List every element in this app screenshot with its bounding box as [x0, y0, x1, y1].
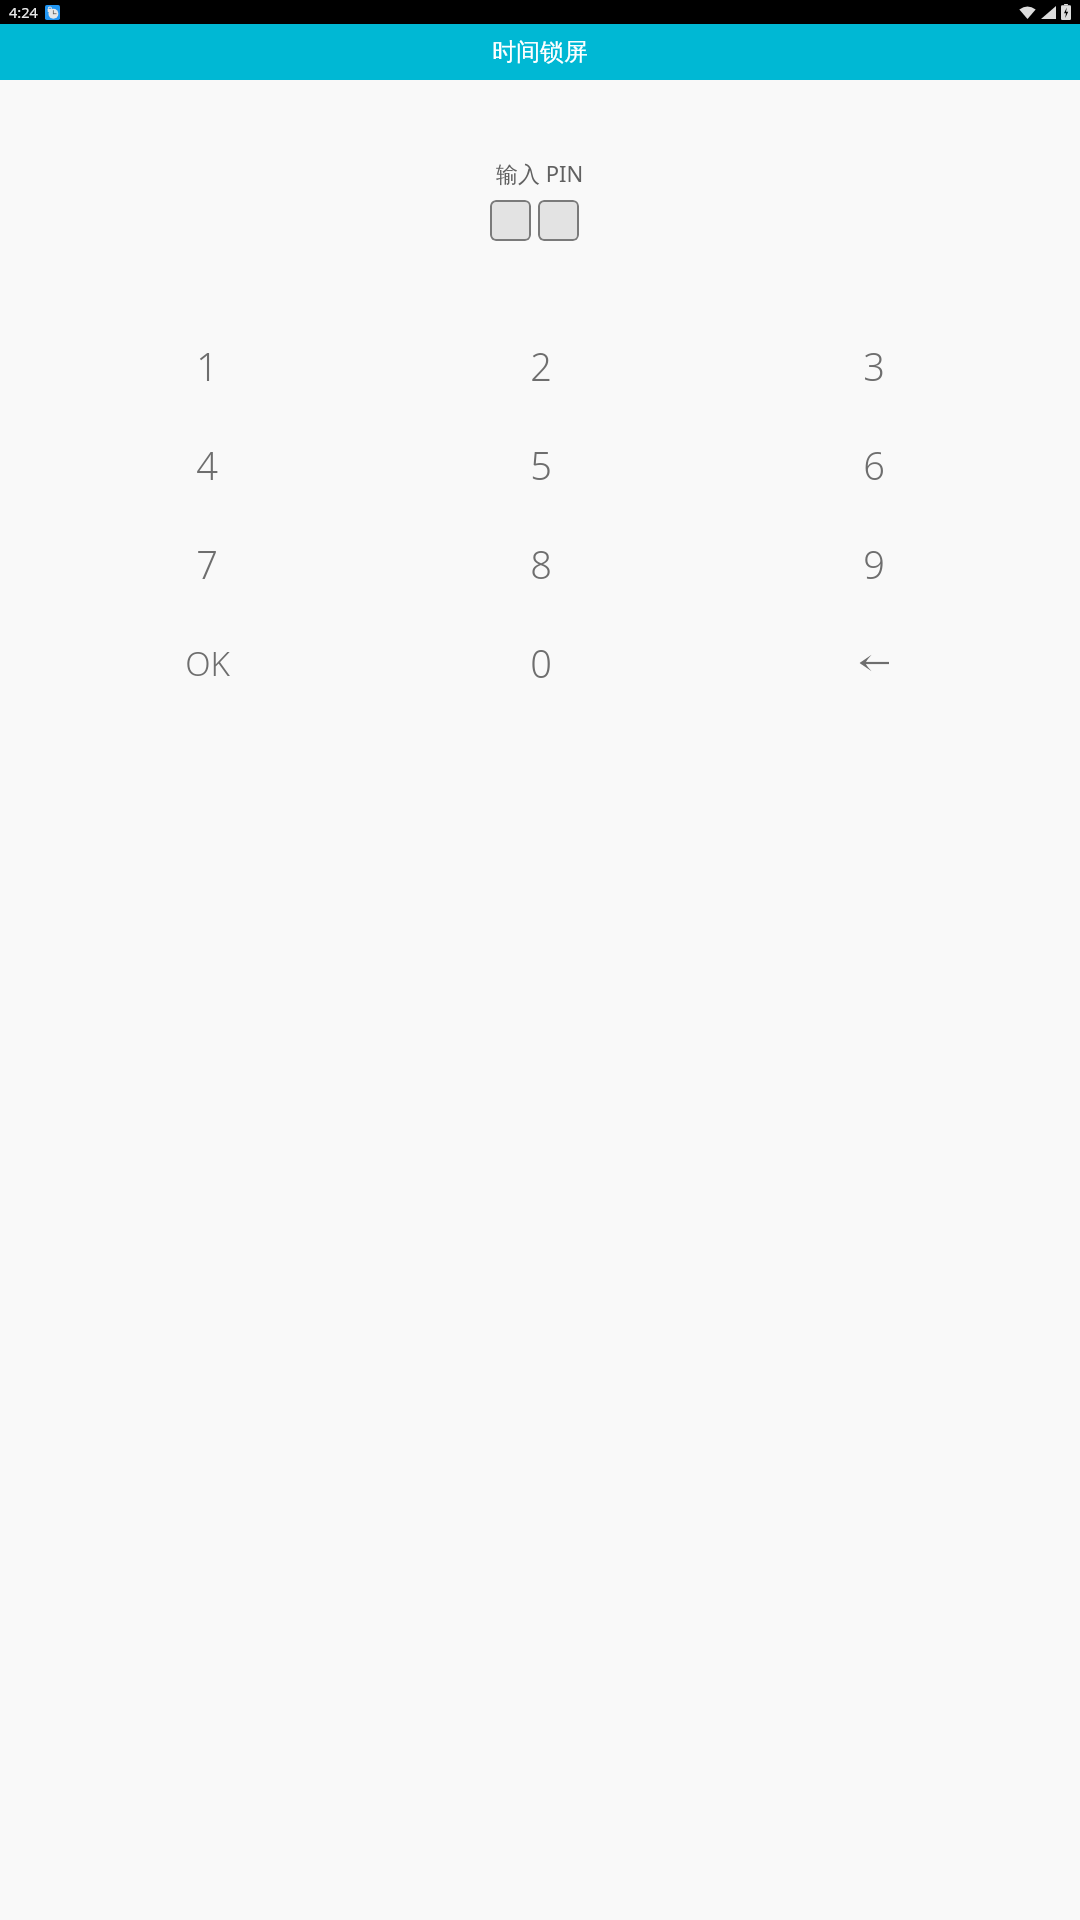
button[interactable]: 6: [707, 432, 1040, 498]
staticText: 0: [530, 637, 552, 689]
staticText: 4: [196, 439, 218, 491]
staticText: 输入 PIN: [496, 158, 584, 188]
staticText: 7: [196, 538, 218, 590]
button[interactable]: 4: [40, 432, 374, 498]
button[interactable]: 5: [374, 432, 707, 498]
staticText: 1: [196, 340, 218, 392]
button[interactable]: 9: [707, 531, 1040, 597]
button[interactable]: 1: [40, 333, 374, 399]
button[interactable]: [490, 200, 531, 241]
staticText: 2: [530, 340, 552, 392]
button[interactable]: 3: [707, 333, 1040, 399]
button[interactable]: 2: [374, 333, 707, 399]
button[interactable]: 8: [374, 531, 707, 597]
button[interactable]: [538, 200, 579, 241]
staticText: 8: [530, 538, 552, 590]
staticText: OK: [185, 641, 230, 686]
staticText: 9: [863, 538, 885, 590]
button[interactable]: OK: [40, 630, 374, 696]
staticText: 5: [530, 439, 552, 491]
staticText: 时间锁屏: [492, 37, 588, 67]
button[interactable]: Backspace: [707, 630, 1040, 696]
button[interactable]: 7: [40, 531, 374, 597]
button[interactable]: 0: [374, 630, 707, 696]
staticText: 6: [863, 439, 885, 491]
staticText: 3: [863, 340, 885, 392]
staticText: 4:24: [9, 2, 38, 22]
